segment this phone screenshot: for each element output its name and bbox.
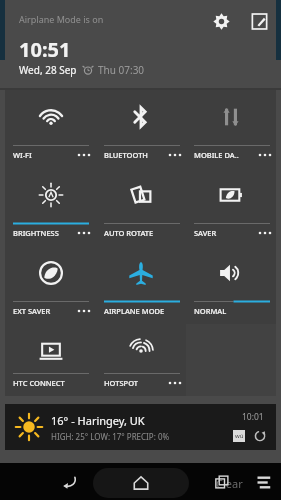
button[interactable]: EXT SAVER	[5, 246, 96, 324]
staticText: AUTO ROTATE	[104, 228, 154, 238]
staticText: HOTSPOT	[104, 378, 139, 388]
staticText: 10:01	[242, 411, 264, 423]
staticText: Clear	[216, 476, 243, 491]
staticText: NORMAL	[194, 306, 227, 316]
staticText: 16° - Haringey, UK	[51, 413, 145, 428]
button[interactable]: Refresh	[254, 430, 266, 442]
staticText: AIRPLANE MODE	[104, 306, 165, 316]
staticText: HIGH: 25° LOW: 17° PRECIP: 0%	[51, 431, 170, 442]
button[interactable]: MOBILE DA..	[186, 90, 276, 168]
staticText: WI-FI	[13, 150, 32, 160]
button[interactable]: BRIGHTNESS	[5, 168, 96, 246]
button[interactable]: HTC CONNECT	[5, 324, 96, 396]
button[interactable]: SAVER	[186, 168, 276, 246]
button[interactable]: 16° - Haringey, UK	[5, 404, 276, 450]
button[interactable]: HOTSPOT	[96, 324, 186, 396]
button[interactable]: WI-FI	[5, 90, 96, 168]
button[interactable]: Back	[50, 463, 88, 500]
button[interactable]: AIRPLANE MODE	[96, 246, 186, 324]
button[interactable]: Edit	[246, 8, 272, 34]
staticText: Airplane Mode is on	[19, 13, 104, 25]
button[interactable]: NORMAL	[186, 246, 276, 324]
staticText: MOBILE DA..	[194, 150, 239, 160]
button[interactable]: Home	[93, 468, 189, 498]
staticText: wú	[235, 432, 244, 440]
staticText: Wed, 28 Sep	[19, 63, 77, 77]
staticText: BRIGHTNESS	[13, 228, 59, 238]
button[interactable]: Recents	[205, 465, 239, 499]
staticText: HTC CONNECT	[13, 378, 65, 388]
staticText: SAVER	[194, 228, 217, 238]
button[interactable]: BLUETOOTH	[96, 90, 186, 168]
button[interactable]: AUTO ROTATE	[96, 168, 186, 246]
staticText: EXT SAVER	[13, 306, 51, 316]
staticText: 10:51	[19, 36, 71, 63]
button[interactable]: Menu	[248, 467, 278, 497]
staticText: BLUETOOTH	[104, 150, 148, 160]
staticText: Thu 07:30	[98, 63, 145, 77]
button[interactable]: Settings	[208, 8, 234, 34]
